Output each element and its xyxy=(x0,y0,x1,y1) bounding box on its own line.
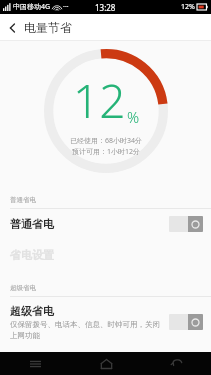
staticText: 普通省电 xyxy=(10,217,54,231)
button[interactable]: Back xyxy=(0,16,78,39)
button[interactable]: Menu xyxy=(0,352,71,375)
button[interactable]: Home xyxy=(71,352,141,375)
button[interactable]: 省电设置 xyxy=(0,239,211,271)
staticText: % xyxy=(127,107,140,127)
staticText: 13:28 xyxy=(95,2,116,13)
staticText: 省电设置 xyxy=(10,248,54,262)
staticText: 12% xyxy=(181,2,195,12)
staticText: 已经使用：68小时34分 xyxy=(70,136,143,146)
staticText: 预计可用：1小时12分 xyxy=(72,147,141,157)
staticText: 中国移动4G xyxy=(13,2,51,12)
button[interactable]: 超级省电 xyxy=(0,297,211,347)
staticText: 12 xyxy=(73,69,126,132)
staticText: 普通省电 xyxy=(10,196,36,204)
staticText: 超级省电 xyxy=(10,284,36,292)
staticText: 电量节省 xyxy=(24,20,72,35)
button[interactable]: Toggle xyxy=(169,216,203,232)
staticText: 仅保留拨号、电话本、信息、时钟可用，关闭上网功能 xyxy=(10,320,163,340)
staticText: 超级省电 xyxy=(10,304,54,318)
button[interactable]: Back xyxy=(141,352,211,375)
staticText: ··· xyxy=(63,2,69,12)
button[interactable]: 普通省电 xyxy=(0,209,211,239)
button[interactable]: Toggle xyxy=(169,314,203,330)
